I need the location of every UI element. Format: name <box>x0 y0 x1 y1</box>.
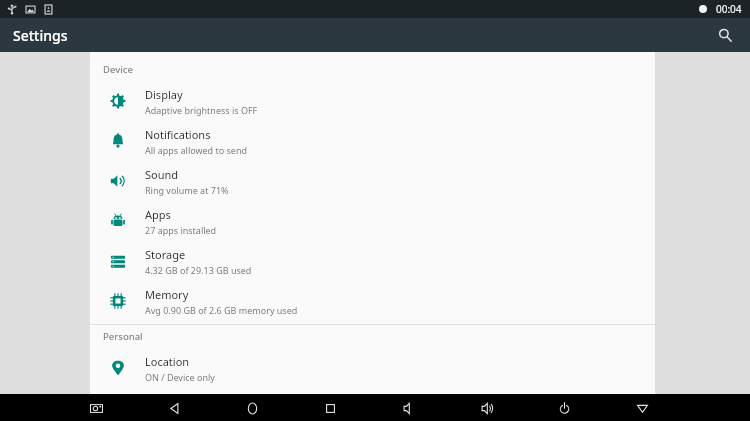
button[interactable]: Back <box>161 395 187 421</box>
staticText: Personal <box>103 330 143 343</box>
button[interactable]: Sound <box>90 161 655 201</box>
staticText: Avg 0.90 GB of 2.6 GB memory used <box>145 304 298 316</box>
button[interactable]: Power <box>551 395 577 421</box>
staticText: Sound <box>145 167 179 182</box>
staticText: 00:04 <box>716 2 742 16</box>
staticText: Display <box>145 87 183 102</box>
button[interactable]: Home <box>239 395 265 421</box>
staticText: Ring volume at 71% <box>145 184 229 196</box>
staticText: All apps allowed to send <box>145 144 248 156</box>
button[interactable]: Hide navigation <box>629 395 655 421</box>
staticText: Settings <box>13 26 68 45</box>
staticText: Adaptive brightness is OFF <box>145 104 258 116</box>
staticText: Device <box>103 63 133 76</box>
staticText: Location <box>145 354 190 369</box>
button[interactable]: Notifications <box>90 121 655 161</box>
button[interactable]: Screenshot <box>83 395 109 421</box>
staticText: Notifications <box>145 127 211 142</box>
staticText: 27 apps installed <box>145 224 217 236</box>
staticText: 4.32 GB of 29.13 GB used <box>145 264 252 276</box>
staticText: Storage <box>145 247 186 262</box>
staticText: Memory <box>145 287 189 302</box>
button[interactable]: Recents <box>317 395 343 421</box>
button[interactable]: Settings <box>13 18 68 52</box>
button[interactable]: Location <box>90 348 655 388</box>
staticText: Apps <box>145 207 171 222</box>
button[interactable]: Volume up <box>473 395 499 421</box>
button[interactable]: Display <box>90 81 655 121</box>
button[interactable]: Storage <box>90 241 655 281</box>
button[interactable]: Volume down <box>395 395 421 421</box>
button[interactable]: Memory <box>90 281 655 321</box>
staticText: ON / Device only <box>145 371 215 383</box>
button[interactable]: Search <box>711 21 739 49</box>
button[interactable]: Apps <box>90 201 655 241</box>
